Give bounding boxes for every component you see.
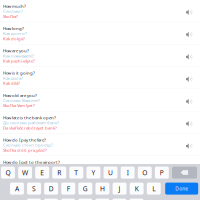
staticText: Y	[91, 168, 95, 177]
button[interactable]: Play pronunciation	[183, 156, 197, 178]
button[interactable]: A	[10, 183, 24, 195]
staticText: How late is the bank open?	[3, 115, 56, 120]
button[interactable]: How much?	[0, 0, 200, 22]
button[interactable]: T	[69, 167, 83, 179]
staticText: J	[118, 184, 120, 193]
staticText: T	[74, 168, 78, 177]
button[interactable]: U	[104, 167, 117, 179]
staticText: Done	[175, 185, 188, 192]
staticText: Q	[5, 168, 10, 177]
button[interactable]: P	[155, 167, 169, 179]
button[interactable]: S	[27, 183, 41, 195]
staticText: R	[57, 168, 61, 177]
staticText: Как доехать до аэропорта?	[3, 164, 60, 170]
button[interactable]: How late is the bank open?	[0, 111, 200, 134]
staticText: D	[49, 184, 54, 193]
staticText: L	[152, 184, 155, 193]
staticText: F	[67, 184, 70, 193]
staticText: Skol'ka Vam lyet?	[3, 103, 35, 108]
button[interactable]: N	[112, 199, 126, 200]
staticText: Сколько стоит проезд?	[3, 142, 53, 148]
button[interactable]: M	[130, 199, 143, 200]
staticText: H	[100, 184, 105, 193]
button[interactable]: Play pronunciation	[183, 45, 197, 67]
button[interactable]: G	[78, 183, 92, 195]
staticText: P	[160, 168, 164, 177]
button[interactable]: How do I get to the airport?	[0, 156, 200, 178]
staticText: Kak dilá?	[3, 80, 20, 86]
button[interactable]: R	[52, 167, 66, 179]
staticText: Kak da-yékhat' da aeropórta?	[3, 169, 61, 175]
staticText: How much?	[3, 3, 26, 9]
button[interactable]: Play pronunciation	[183, 134, 197, 156]
button[interactable]: Z	[27, 199, 41, 200]
staticText: E	[40, 168, 44, 177]
staticText: Как дела?	[3, 75, 23, 81]
staticText: Skol'ka stóit pra-yézd?	[3, 147, 47, 153]
button[interactable]: Y	[86, 167, 100, 179]
button[interactable]: Play pronunciation	[183, 89, 197, 111]
button[interactable]: B	[95, 199, 109, 200]
button[interactable]: Done	[165, 183, 198, 195]
button[interactable]: V	[78, 199, 92, 200]
staticText: I	[127, 168, 129, 177]
button[interactable]: X	[44, 199, 58, 200]
staticText: Сколько Вам лет?	[3, 97, 40, 103]
staticText: How long?	[3, 25, 24, 31]
staticText: How old are you?	[3, 92, 37, 98]
button[interactable]: Play pronunciation	[183, 0, 197, 22]
button[interactable]: I	[121, 167, 135, 179]
button[interactable]: W	[18, 167, 32, 179]
button[interactable]: How long?	[0, 22, 200, 45]
button[interactable]: Delete	[172, 167, 197, 179]
staticText: How do I get to the airport?	[3, 159, 60, 165]
button[interactable]: Play pronunciation	[183, 67, 197, 89]
button[interactable]: F	[61, 183, 75, 195]
staticText: K	[135, 184, 139, 193]
staticText: До скольки работает банк?	[3, 120, 59, 125]
staticText: O	[142, 168, 147, 177]
staticText: How do I pay the fare?	[3, 137, 46, 143]
button[interactable]: D	[44, 183, 58, 195]
button[interactable]: Q	[1, 167, 15, 179]
button[interactable]: Play pronunciation	[183, 111, 197, 134]
staticText: Kak pazhi-váyte?	[3, 58, 35, 64]
button[interactable]: How are you?	[0, 45, 200, 67]
staticText: Skol'ka?	[3, 13, 18, 19]
staticText: A	[15, 184, 19, 193]
staticText: Kak dolga?	[3, 36, 25, 41]
staticText: Как долго?	[3, 30, 27, 36]
button[interactable]: H	[95, 183, 109, 195]
staticText: S	[32, 184, 36, 193]
button[interactable]: How old are you?	[0, 89, 200, 111]
staticText: How is it going?	[3, 70, 35, 76]
button[interactable]: K	[130, 183, 144, 195]
staticText: Сколько?	[3, 8, 23, 14]
button[interactable]: Play pronunciation	[183, 22, 197, 45]
button[interactable]: E	[35, 167, 49, 179]
staticText: Da skal'kée rabótayet bank?	[3, 125, 57, 131]
staticText: U	[108, 168, 113, 177]
button[interactable]: L	[147, 183, 161, 195]
staticText: How are you?	[3, 48, 29, 53]
staticText: Как поживаете?	[3, 53, 34, 59]
button[interactable]: J	[113, 183, 126, 195]
button[interactable]: How is it going?	[0, 67, 200, 89]
staticText: G	[83, 184, 88, 193]
button[interactable]: C	[61, 199, 75, 200]
button[interactable]: O	[138, 167, 152, 179]
staticText: W	[22, 168, 28, 177]
button[interactable]: How do I pay the fare?	[0, 134, 200, 156]
